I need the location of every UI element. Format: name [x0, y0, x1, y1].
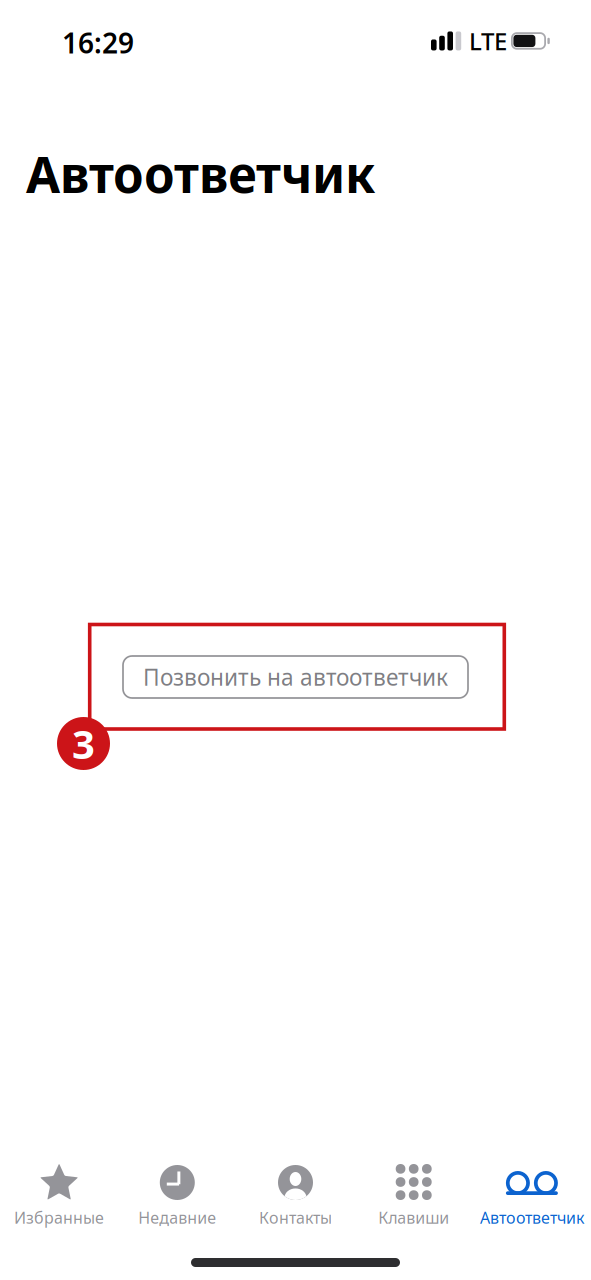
button[interactable]: Избранные	[0, 1150, 118, 1280]
staticText: LTE	[469, 25, 507, 57]
staticText: Позвонить на автоответчик	[143, 662, 448, 692]
button[interactable]: Автоответчик	[473, 1150, 591, 1280]
staticText: Контакты	[259, 1207, 332, 1228]
staticText: Автоответчик	[480, 1207, 584, 1228]
button[interactable]: Недавние	[118, 1150, 236, 1280]
button[interactable]: Позвонить на автоответчик	[123, 656, 468, 698]
staticText: 3	[72, 717, 95, 770]
button[interactable]: Клавиши	[355, 1150, 473, 1280]
staticText: Автоответчик	[26, 141, 375, 206]
staticText: Избранные	[14, 1207, 104, 1228]
staticText: 16:29	[62, 24, 134, 61]
button[interactable]: Контакты	[236, 1150, 355, 1280]
staticText: Недавние	[138, 1207, 216, 1228]
staticText: Клавиши	[378, 1207, 449, 1228]
